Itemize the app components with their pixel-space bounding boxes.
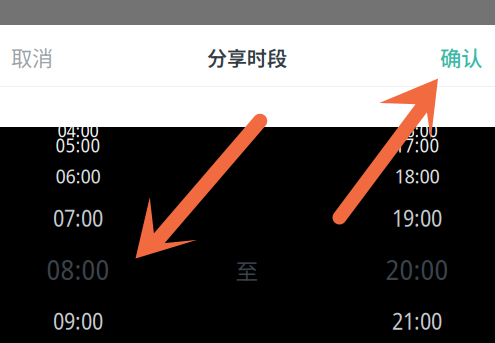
staticText: 08:00 bbox=[46, 251, 109, 288]
staticText: 09:00 bbox=[53, 306, 103, 336]
staticText: 17:00 bbox=[394, 132, 439, 158]
staticText: 21:00 bbox=[392, 306, 442, 336]
button[interactable]: 取消 bbox=[0, 33, 67, 81]
staticText: 取消 bbox=[11, 42, 53, 72]
staticText: 05:00 bbox=[55, 132, 100, 158]
staticText: 06:00 bbox=[55, 161, 100, 189]
staticText: 18:00 bbox=[394, 161, 439, 189]
staticText: 分享时段 bbox=[207, 42, 287, 71]
staticText: 19:00 bbox=[392, 203, 442, 233]
staticText: 04:00 bbox=[57, 117, 98, 143]
staticText: 07:00 bbox=[53, 203, 103, 233]
staticText: 16:00 bbox=[396, 117, 437, 143]
staticText: 20:00 bbox=[385, 251, 448, 288]
staticText: 确认 bbox=[440, 42, 482, 72]
button[interactable]: 确认 bbox=[426, 33, 495, 81]
staticText: 至 bbox=[235, 254, 258, 286]
